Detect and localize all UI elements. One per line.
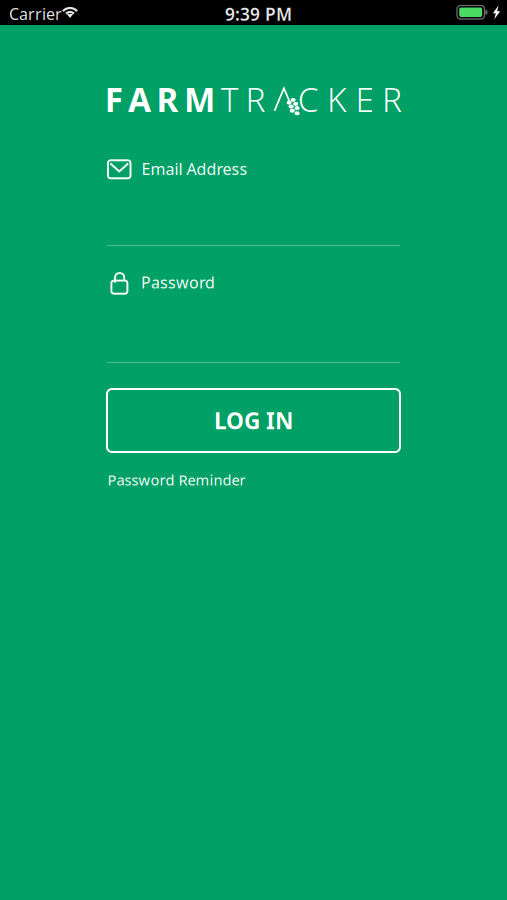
staticText: K	[327, 77, 347, 121]
staticText: Email Address	[141, 158, 247, 179]
button[interactable]: Password Reminder	[107, 470, 245, 489]
staticText: LOG IN	[214, 405, 293, 435]
staticText: R	[156, 77, 178, 121]
staticText: E	[355, 77, 373, 121]
staticText: R	[245, 77, 265, 121]
staticText: A	[128, 77, 151, 121]
button[interactable]: LOG IN	[107, 389, 400, 452]
staticText: 9:39 PM	[225, 2, 292, 25]
staticText: Password	[141, 272, 215, 293]
staticText: M	[184, 77, 215, 121]
staticText: C	[298, 77, 319, 121]
staticText: F	[105, 77, 123, 121]
staticText: R	[382, 77, 402, 121]
staticText: Password Reminder	[107, 470, 245, 489]
staticText: Carrier	[9, 3, 62, 24]
staticText: T	[221, 77, 239, 121]
